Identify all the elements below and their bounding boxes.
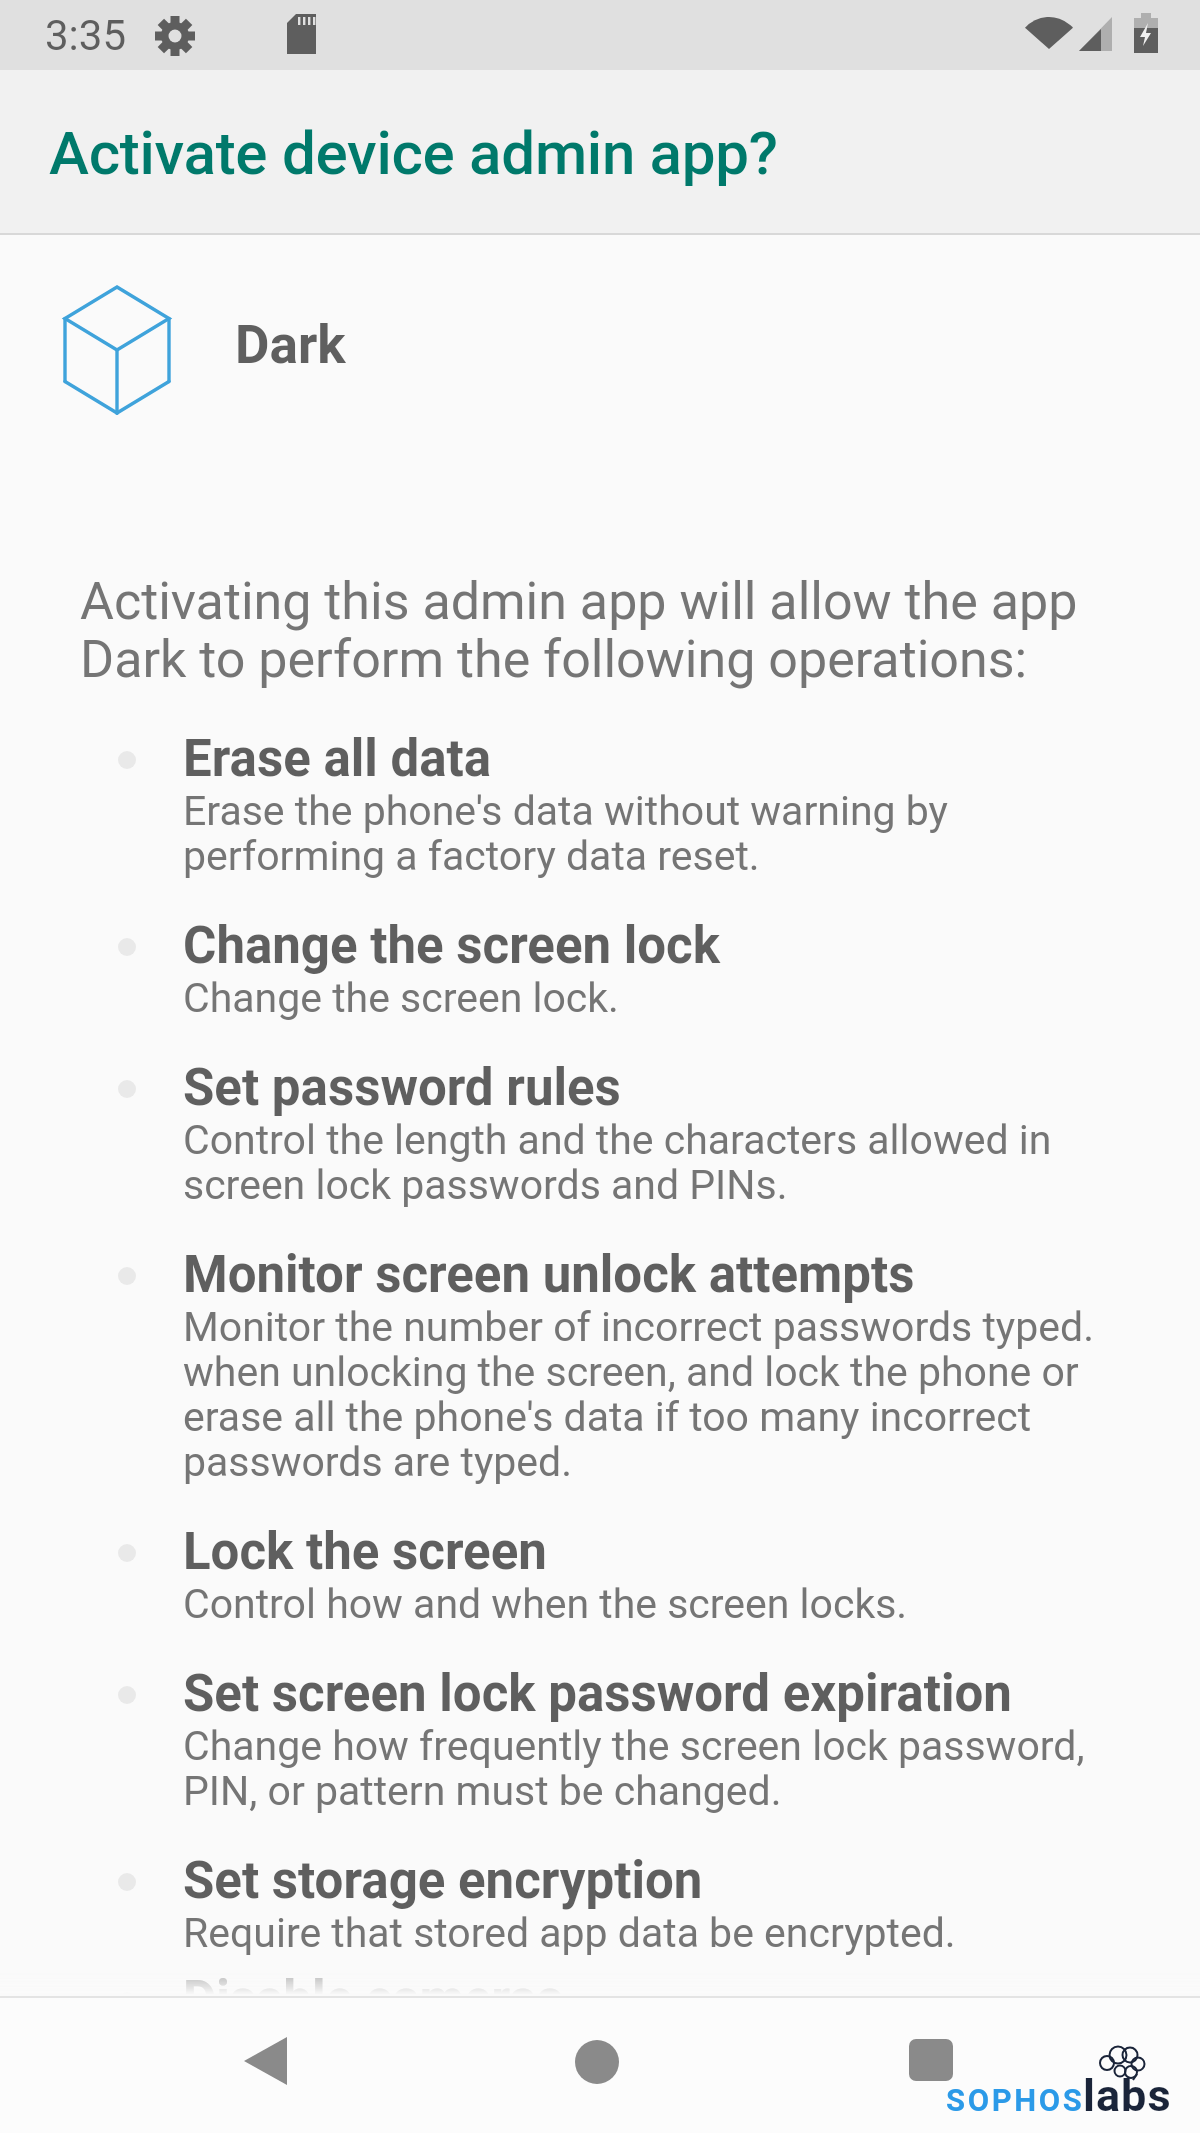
- button[interactable]: [236, 2032, 294, 2090]
- staticText: Monitor screen unlock attempts: [183, 1245, 915, 1305]
- button[interactable]: [568, 2034, 626, 2092]
- staticText: Require that stored app data be encrypte…: [183, 1909, 956, 1957]
- staticText: Activate device admin app?: [49, 118, 778, 188]
- button[interactable]: [901, 2034, 959, 2092]
- staticText: Control how and when the screen locks.: [183, 1580, 908, 1628]
- staticText: Change the screen lock: [183, 916, 720, 976]
- staticText: Set password rules: [183, 1058, 621, 1118]
- staticText: 3:35: [45, 11, 126, 60]
- staticText: Change how frequently the screen lock pa…: [183, 1722, 1085, 1815]
- staticText: Lock the screen: [183, 1522, 547, 1582]
- staticText: Activating this admin app will allow the…: [80, 571, 1078, 689]
- staticText: SOPHOS: [946, 2082, 1085, 2118]
- staticText: Set storage encryption: [183, 1851, 703, 1911]
- staticText: Change the screen lock.: [183, 974, 619, 1022]
- staticText: Set screen lock password expiration: [183, 1664, 1012, 1724]
- staticText: Dark: [235, 314, 346, 376]
- staticText: Monitor the number of incorrect password…: [183, 1303, 1094, 1486]
- staticText: Erase the phone's data without warning b…: [183, 787, 948, 880]
- staticText: Disable cameras: [183, 1970, 563, 2030]
- staticText: labs: [1083, 2069, 1172, 2122]
- staticText: Control the length and the characters al…: [183, 1116, 1052, 1209]
- staticText: Erase all data: [183, 729, 492, 789]
